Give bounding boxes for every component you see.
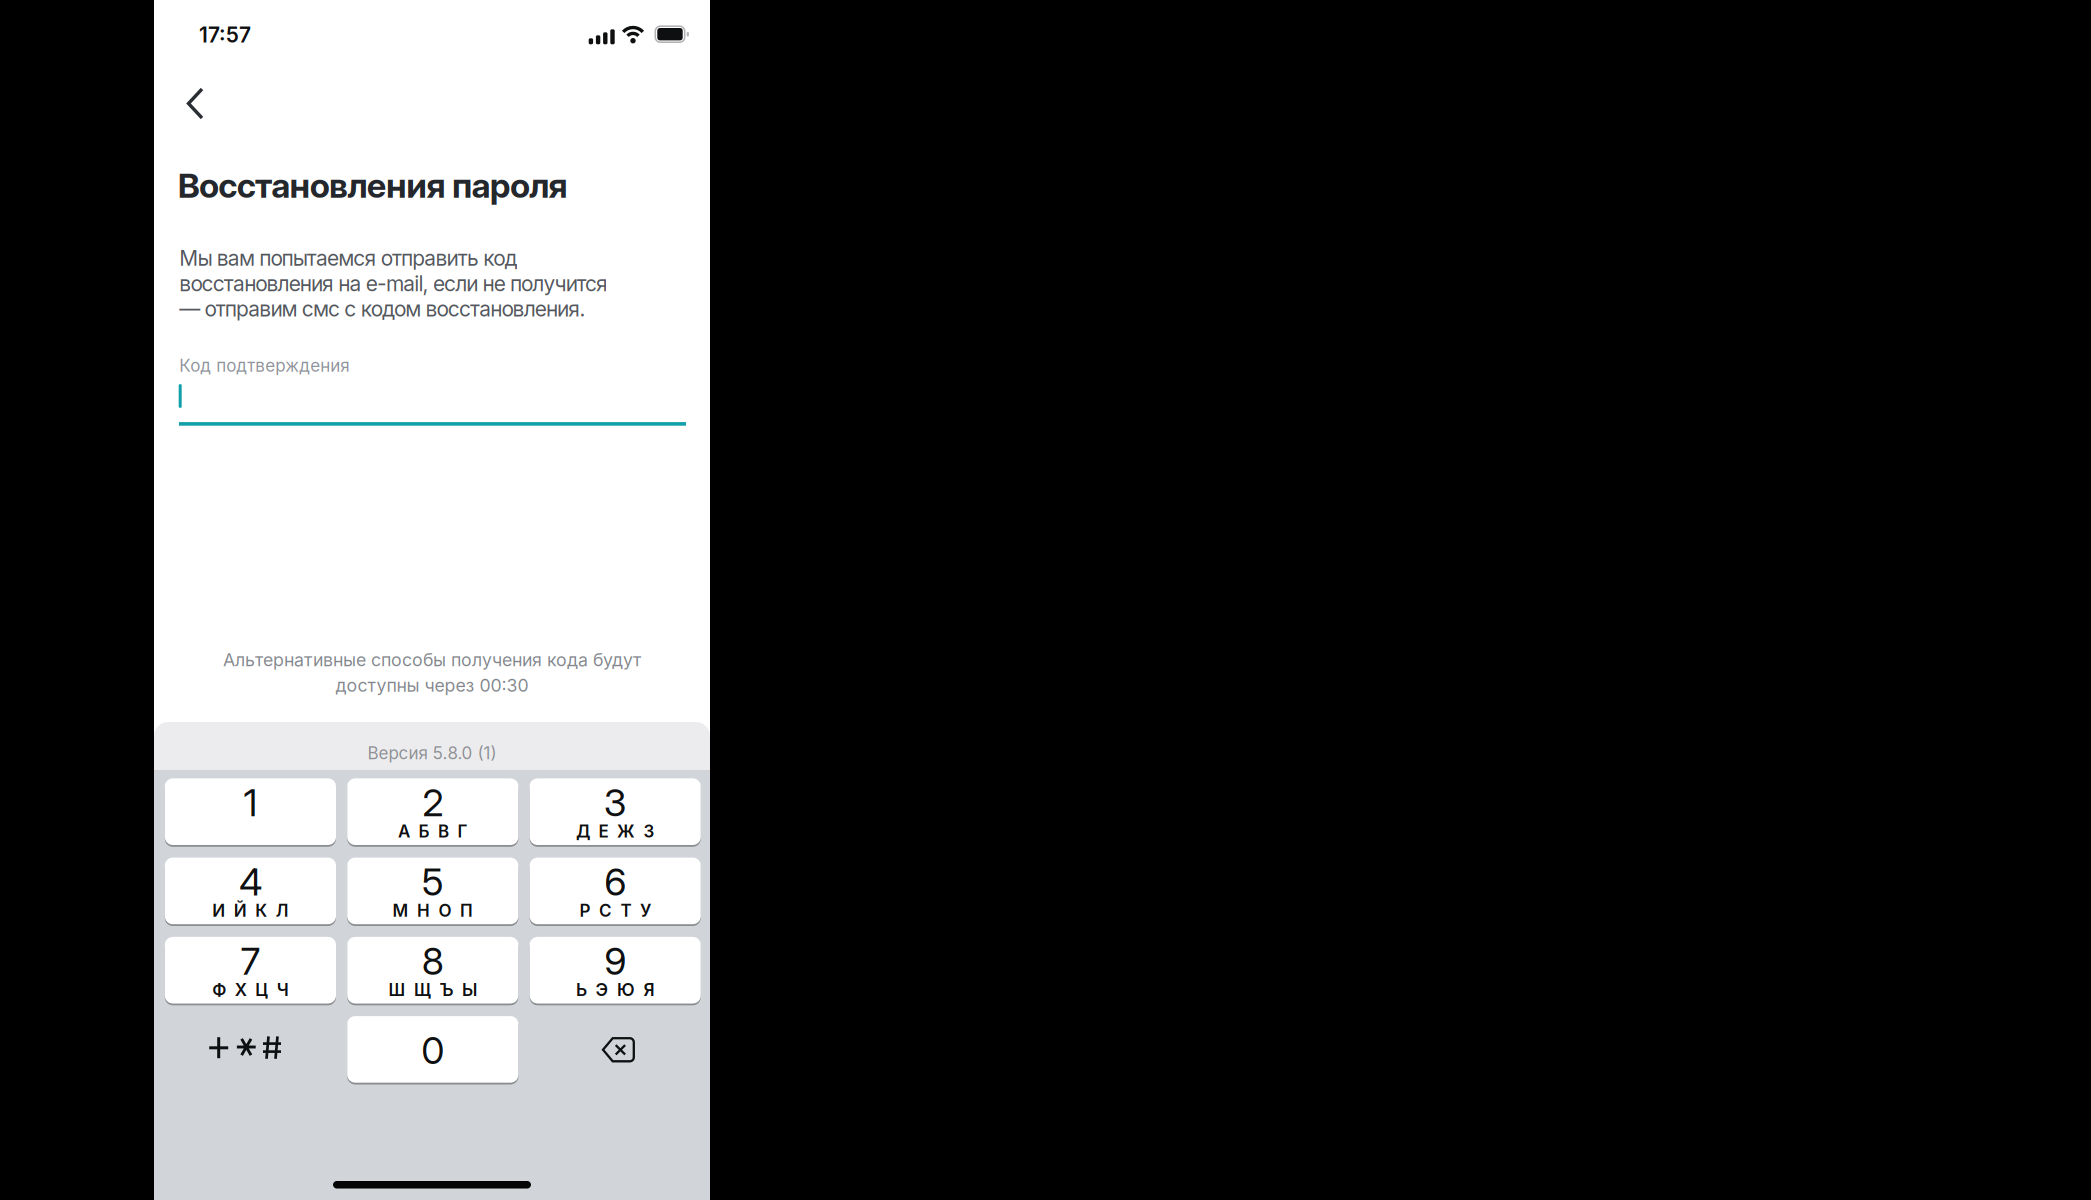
staticText: И Й К Л [212,900,289,921]
staticText: 0 [421,1027,444,1073]
staticText: Альтернативные способы получения кода бу… [223,649,641,671]
button[interactable]: 8 [347,937,518,1003]
staticText: 6 [604,859,626,905]
button[interactable]: 7 [165,937,336,1003]
staticText: 9 [604,938,626,984]
staticText: 8 [422,938,444,984]
staticText: Р С Т У [579,900,651,921]
staticText: 7 [240,938,260,984]
button[interactable]: 5 [347,858,518,924]
staticText: Д Е Ж З [576,821,654,842]
button[interactable]: 9 [530,937,701,1003]
button[interactable]: 1 [165,778,336,845]
staticText: — отправим смс с кодом восстановления. [179,296,585,321]
button[interactable]: Back [173,87,217,120]
staticText: Ф Х Ц Ч [212,979,289,1000]
button[interactable]: 4 [165,858,336,924]
staticText: 2 [422,780,443,825]
staticText: Ш Щ Ъ Ы [388,979,477,1000]
staticText: Восстановления пароля [178,165,567,206]
staticText: 1 [243,780,257,825]
button[interactable]: 6 [530,858,701,924]
staticText: Код подтверждения [179,355,349,376]
staticText: доступны через 00:30 [335,675,528,696]
staticText: М Н О П [392,900,473,921]
staticText: 4 [239,859,262,905]
staticText: Ь Э Ю Я [576,979,654,1000]
staticText: Версия 5.8.0 (1) [367,743,496,763]
staticText: 17:57 [199,22,251,48]
staticText: Мы вам попытаемся отправить код [179,245,517,271]
button[interactable]: 3 [530,778,701,845]
button[interactable]: Delete [601,1037,635,1062]
staticText: восстановления на e-mail, если не получи… [179,271,608,296]
button[interactable]: 2 [347,778,518,845]
staticText: А Б В Г [398,821,467,842]
button[interactable]: 0 [347,1016,518,1083]
staticText: 5 [422,859,444,905]
staticText: 3 [604,780,627,825]
button[interactable]: More symbols [209,1036,282,1059]
